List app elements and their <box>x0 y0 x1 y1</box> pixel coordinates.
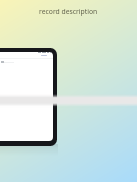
staticText: record description <box>39 7 98 16</box>
button[interactable] <box>0 52 53 141</box>
